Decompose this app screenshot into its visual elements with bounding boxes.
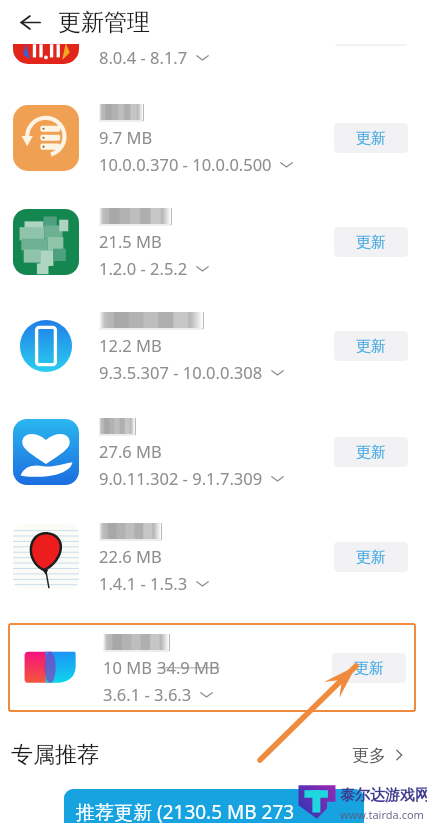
staticText: 更新 [356,129,386,148]
staticText: 更新 [356,337,386,356]
staticText: 更多 [352,745,386,766]
button[interactable]: 22.6 MB [0,505,427,609]
staticText: 10 MB [103,656,152,678]
button[interactable]: 78.6 MB [0,0,427,83]
staticText: 9.3.5.307 - 10.0.0.308 [99,361,263,383]
staticText: 更新 [356,443,386,462]
staticText: 更新 [356,233,386,252]
button[interactable]: 更新 [334,331,408,361]
staticText: 34.9 MB [157,656,220,678]
button[interactable]: Back [12,5,46,39]
staticText: 22.6 MB [99,545,162,567]
staticText: 27.6 MB [99,440,162,462]
staticText: 推荐更新 (2130.5 MB 273 [76,799,295,823]
button[interactable]: 更新 [334,16,408,46]
button[interactable]: 9.7 MB [0,86,427,190]
staticText: www.tairda.com [340,807,424,822]
button[interactable]: 专属推荐 [0,733,427,777]
staticText: 更新 [354,659,384,678]
staticText: 21.5 MB [99,230,162,252]
staticText: 专属推荐 [11,741,99,769]
staticText: 9.7 MB [99,126,153,148]
staticText: 1.4.1 - 1.5.3 [99,572,188,594]
button[interactable]: 21.5 MB [0,190,427,294]
button[interactable]: 27.6 MB [0,400,427,504]
staticText: 78.6 MB [99,19,162,41]
button[interactable]: 更新 [334,437,408,467]
button[interactable]: 12.2 MB [0,294,427,398]
staticText: 9.0.11.302 - 9.1.7.309 [99,467,263,489]
staticText: 泰尔达游戏网 [340,786,427,805]
staticText: 更新管理 [58,8,150,37]
staticText: 1.2.0 - 2.5.2 [99,257,188,279]
staticText: 更新 [356,548,386,567]
staticText: 8.0.4 - 8.1.7 [99,46,188,68]
staticText: 12.2 MB [99,334,162,356]
button[interactable]: 推荐更新 (2130.5 MB 273 [64,789,364,823]
staticText: 10.0.0.370 - 10.0.0.500 [99,153,272,175]
button[interactable]: 10 MB [8,623,416,712]
button[interactable]: 更新 [332,653,406,683]
button[interactable]: 更新 [334,227,408,257]
button[interactable]: 更新 [334,542,408,572]
staticText: 3.6.1 - 3.6.3 [103,683,192,705]
button[interactable]: 更新 [334,123,408,153]
